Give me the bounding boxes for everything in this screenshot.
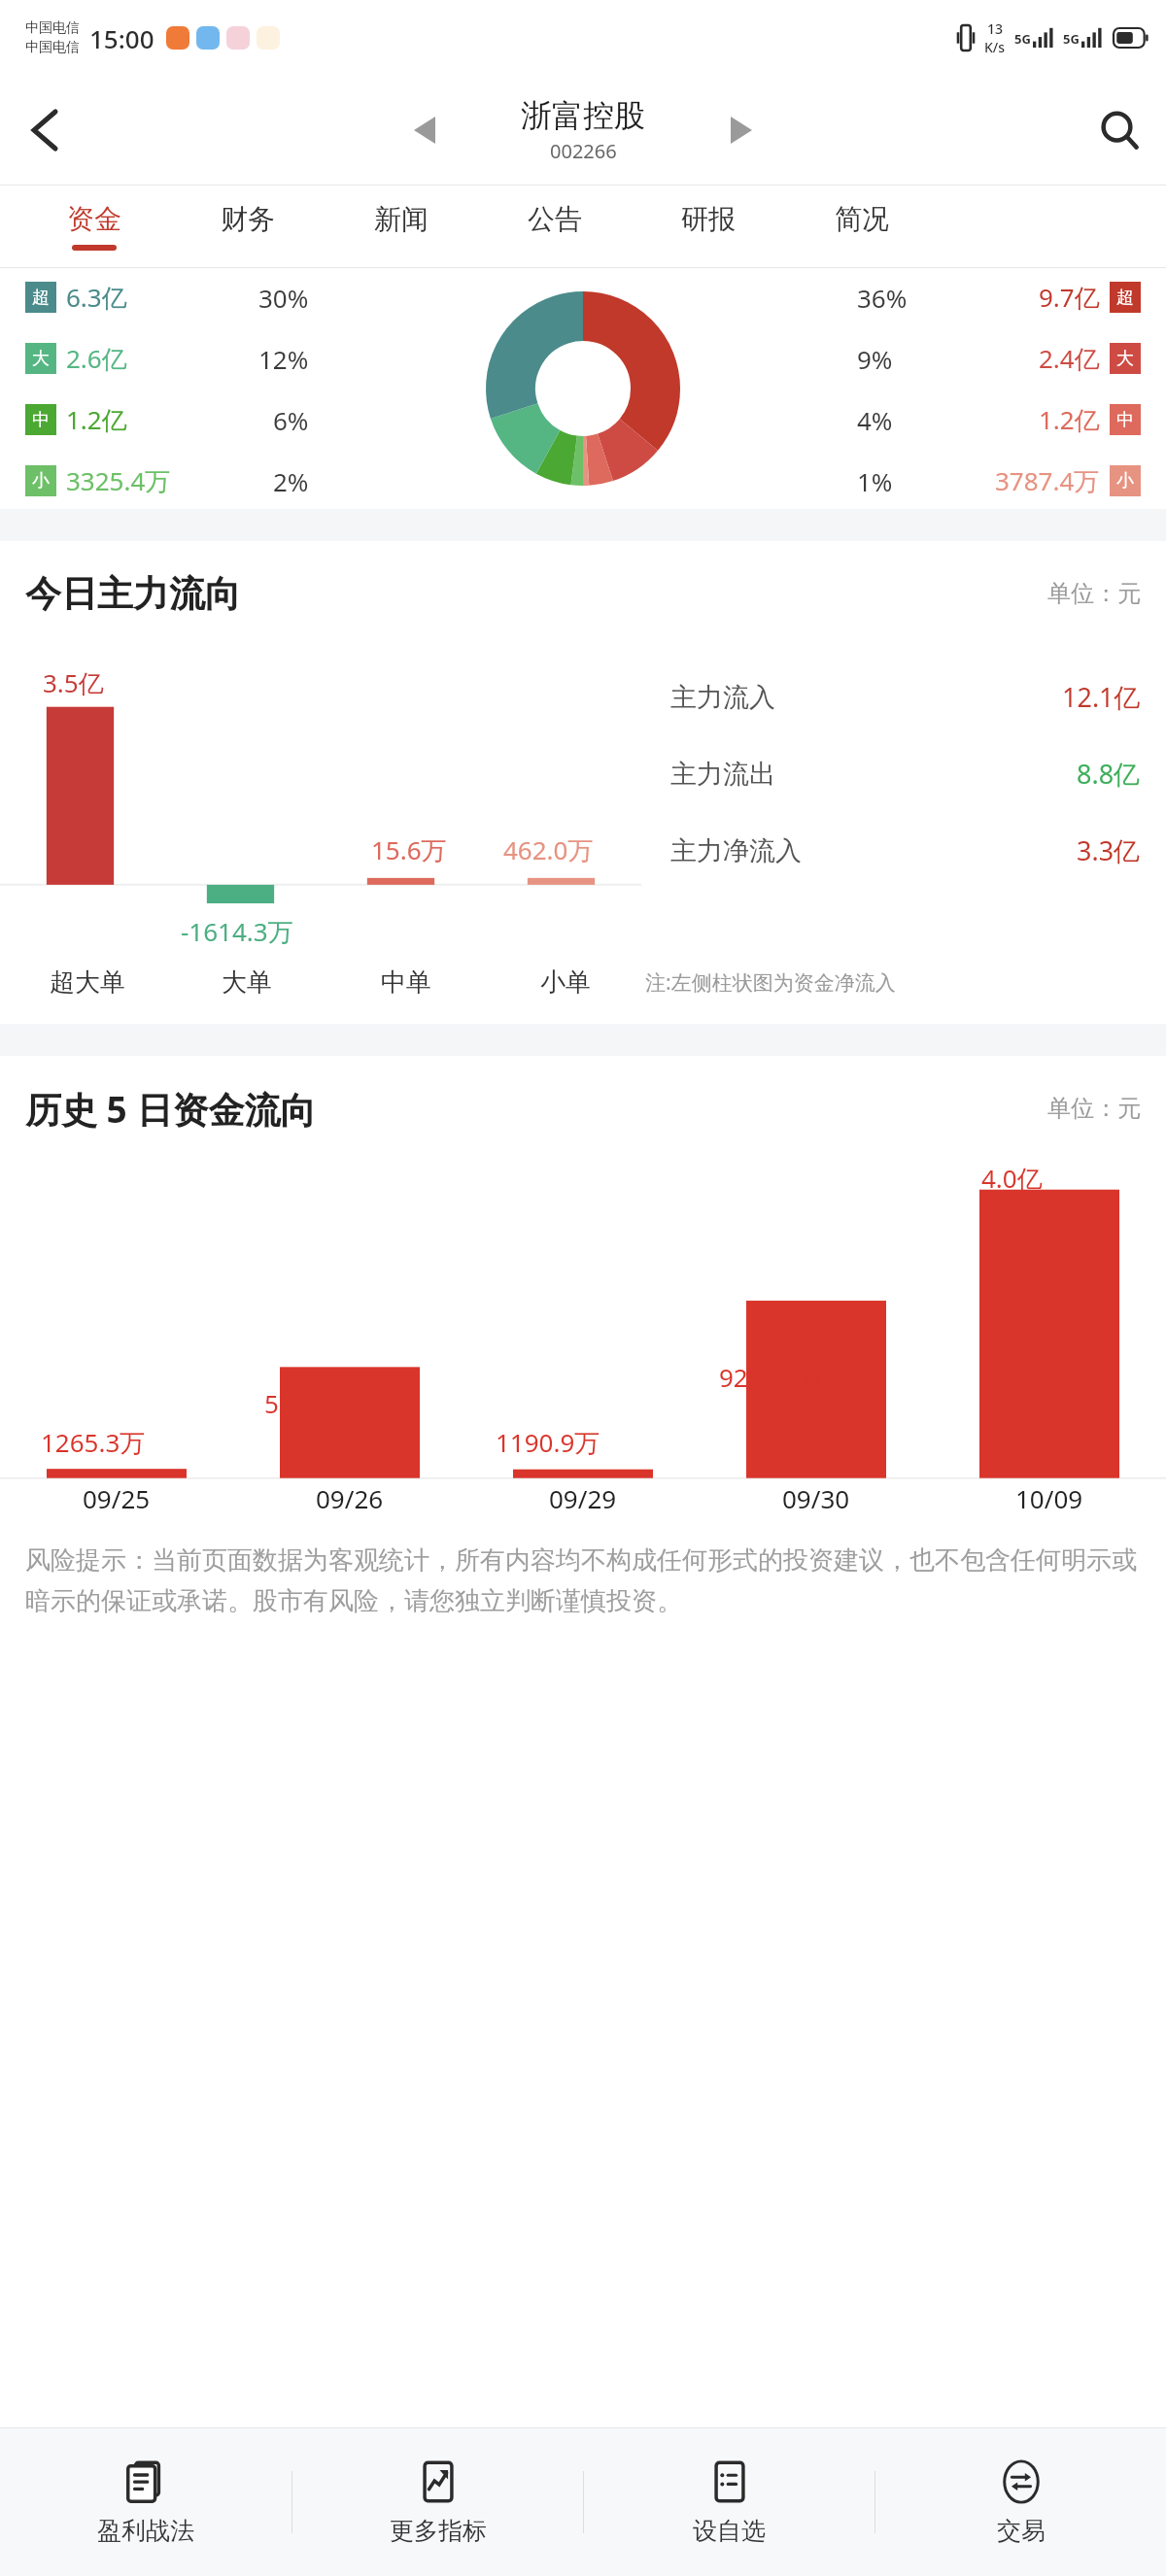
staticText: 小: [1116, 470, 1134, 492]
staticText: 12.1亿: [1062, 679, 1141, 715]
staticText: 中单: [381, 966, 431, 999]
button[interactable]: 主力流入: [641, 679, 1141, 715]
staticText: 单位：元: [1047, 579, 1141, 608]
button[interactable]: Next stock: [710, 99, 772, 161]
button[interactable]: 中: [25, 402, 309, 437]
button[interactable]: 36%: [857, 280, 1141, 315]
staticText: 3.5亿: [43, 665, 104, 700]
staticText: 中: [1116, 409, 1134, 431]
staticText: 主力流出: [670, 758, 775, 791]
button[interactable]: 更多指标: [292, 2428, 583, 2576]
staticText: 15.6万: [371, 832, 447, 867]
button[interactable]: 盈利战法: [0, 2428, 291, 2576]
button[interactable]: 小: [25, 463, 309, 498]
staticText: 8.8亿: [1077, 756, 1141, 792]
staticText: 002266: [550, 138, 617, 164]
staticText: 09/26: [316, 1481, 384, 1515]
staticText: 交易: [997, 2516, 1046, 2546]
staticText: 大: [32, 348, 50, 370]
staticText: 更多指标: [390, 2516, 487, 2546]
staticText: 简况: [835, 202, 889, 236]
button[interactable]: 研报: [632, 186, 785, 267]
staticText: 今日主力流向: [25, 571, 241, 617]
button[interactable]: 9%: [857, 341, 1141, 376]
staticText: 资金: [67, 202, 121, 236]
button[interactable]: 超: [25, 280, 309, 315]
staticText: 设自选: [693, 2516, 766, 2546]
staticText: 新闻: [374, 202, 429, 236]
button[interactable]: Search: [1080, 91, 1158, 169]
staticText: 36%: [857, 281, 908, 315]
staticText: 13: [987, 19, 1004, 38]
button[interactable]: 简况: [785, 186, 939, 267]
staticText: 09/25: [83, 1481, 151, 1515]
staticText: 公告: [528, 202, 582, 236]
button[interactable]: 主力流出: [641, 756, 1141, 792]
staticText: 9%: [857, 342, 893, 376]
staticText: 主力流入: [670, 681, 775, 714]
staticText: 10/09: [1015, 1481, 1083, 1515]
staticText: 12%: [258, 342, 309, 376]
button[interactable]: Previous stock: [394, 99, 456, 161]
button[interactable]: 4%: [857, 402, 1141, 437]
button[interactable]: 交易: [875, 2428, 1166, 2576]
staticText: 注:左侧柱状图为资金净流入: [645, 968, 896, 997]
button[interactable]: 新闻: [325, 186, 478, 267]
staticText: 研报: [681, 202, 736, 236]
staticText: 3325.4万: [66, 463, 171, 498]
staticText: 超: [1116, 287, 1134, 309]
staticText: 6%: [273, 403, 309, 437]
staticText: 3.3亿: [1077, 832, 1141, 868]
staticText: 中: [32, 409, 50, 431]
staticText: 超: [32, 287, 50, 309]
staticText: 09/30: [782, 1481, 850, 1515]
staticText: 2.4亿: [1039, 341, 1100, 376]
staticText: 大单: [222, 966, 272, 999]
staticText: 2.6亿: [66, 341, 127, 376]
staticText: 中国电信: [25, 39, 80, 56]
staticText: 5G: [1014, 30, 1031, 48]
button[interactable]: 主力净流入: [641, 832, 1141, 868]
staticText: 小: [32, 470, 50, 492]
staticText: 4.0亿: [981, 1161, 1043, 1196]
button[interactable]: 财务: [171, 186, 325, 267]
staticText: 1.2亿: [1039, 402, 1100, 437]
button[interactable]: Back: [8, 93, 82, 167]
staticText: -1614.3万: [181, 914, 293, 949]
staticText: 1.2亿: [66, 402, 127, 437]
staticText: 3787.4万: [995, 463, 1100, 498]
staticText: 30%: [258, 281, 309, 315]
staticText: 15:00: [89, 21, 154, 55]
staticText: 1190.9万: [496, 1425, 600, 1460]
staticText: K/s: [984, 38, 1006, 56]
button[interactable]: 公告: [478, 186, 632, 267]
staticText: 单位：元: [1047, 1094, 1141, 1123]
staticText: 历史 5 日资金流向: [25, 1084, 317, 1134]
staticText: 大: [1116, 348, 1134, 370]
button[interactable]: 设自选: [584, 2428, 874, 2576]
staticText: 4%: [857, 403, 893, 437]
staticText: 9.7亿: [1039, 280, 1100, 315]
button[interactable]: 大: [25, 341, 309, 376]
staticText: 5765.5万: [264, 1386, 369, 1421]
button[interactable]: 资金: [17, 186, 171, 267]
staticText: 462.0万: [503, 832, 594, 867]
staticText: 超大单: [50, 966, 125, 999]
staticText: 1265.3万: [41, 1425, 146, 1460]
staticText: 中国电信: [25, 19, 80, 37]
staticText: 1%: [857, 464, 893, 498]
staticText: 主力净流入: [670, 834, 802, 867]
staticText: 盈利战法: [97, 2516, 194, 2546]
button[interactable]: 1%: [857, 463, 1141, 498]
staticText: 9252.4万: [719, 1360, 824, 1395]
staticText: 2%: [273, 464, 309, 498]
staticText: 财务: [221, 202, 275, 236]
staticText: 09/29: [549, 1481, 617, 1515]
staticText: 小单: [540, 966, 591, 999]
staticText: 5G: [1063, 30, 1080, 48]
staticText: 风险提示：当前页面数据为客观统计，所有内容均不构成任何形式的投资建议，也不包含任…: [25, 1544, 1141, 1617]
staticText: 浙富控股: [521, 96, 645, 135]
staticText: 6.3亿: [66, 280, 127, 315]
